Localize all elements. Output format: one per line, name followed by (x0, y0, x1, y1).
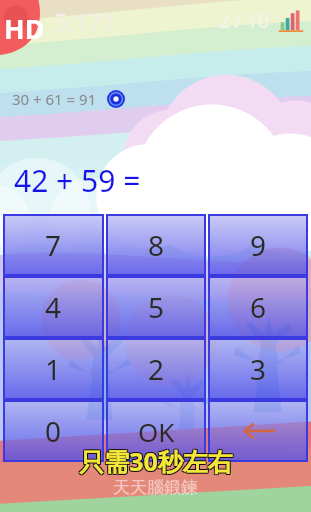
staticText: 只需30秒左右 (78, 444, 232, 478)
button[interactable]: 9 (209, 215, 307, 275)
staticText: 5 (148, 288, 165, 326)
button[interactable]: 3 (209, 339, 307, 399)
button[interactable]: 30 + 61 = 91 (12, 89, 125, 109)
button[interactable]: 0 (4, 401, 103, 461)
staticText: 7 (45, 226, 62, 264)
staticText: 42 + 59 = (14, 160, 141, 201)
staticText: 只需30秒左右 (79, 443, 233, 477)
other: HD (0, 0, 62, 64)
button[interactable]: 8 (107, 215, 205, 275)
staticText: 2 (148, 350, 165, 388)
staticText: 只需30秒左右 (80, 445, 234, 479)
staticText: 30 + 61 = 91 (12, 89, 97, 109)
staticText: 4 (45, 288, 62, 326)
button[interactable]: Backspace (209, 401, 307, 461)
button[interactable]: 5 (107, 277, 205, 337)
button[interactable]: OK (107, 401, 205, 461)
staticText: 2 / 10 (219, 8, 269, 34)
button[interactable]: 6 (209, 277, 307, 337)
staticText: 只需30秒左右 (78, 443, 232, 477)
staticText: 9 (250, 226, 267, 264)
button[interactable]: 4 (4, 277, 103, 337)
staticText: 6 (250, 288, 267, 326)
button[interactable]: 7 (4, 215, 103, 275)
staticText: 8 (148, 226, 165, 264)
staticText: 只需30秒左右 (79, 445, 233, 479)
staticText: 天天腦鍛鍊 (113, 477, 198, 498)
staticText: 只需30秒左右 (80, 443, 234, 477)
staticText: 只需30秒左右 (80, 444, 234, 478)
staticText: 3 (250, 350, 267, 388)
staticText: 5.171 (54, 5, 116, 38)
staticText: 只需30秒左右 (78, 445, 232, 479)
staticText: OK (138, 414, 175, 449)
other: Statistics (279, 9, 303, 33)
staticText: 只需30秒左右 (79, 444, 233, 478)
staticText: 0 (45, 412, 62, 450)
staticText: 1 (45, 350, 62, 388)
button[interactable]: 2 (107, 339, 205, 399)
button[interactable]: 1 (4, 339, 103, 399)
staticText: HD (4, 10, 45, 47)
